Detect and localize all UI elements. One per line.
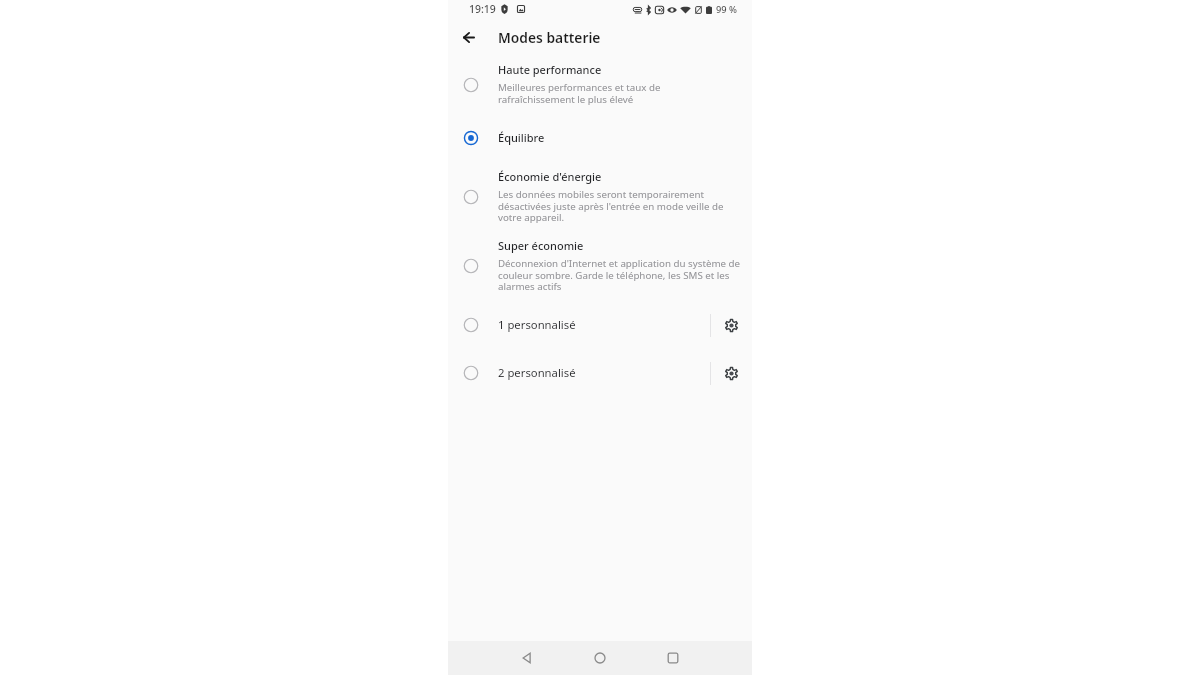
button[interactable]: Équilibre xyxy=(448,109,752,167)
staticText: Modes batterie xyxy=(498,28,601,47)
staticText: Les données mobiles seront temporairemen… xyxy=(498,188,724,224)
button[interactable]: Back xyxy=(510,641,544,675)
staticText: Équilibre xyxy=(498,130,545,145)
staticText: Super économie xyxy=(498,238,584,253)
staticText: Meilleures performances et taux de rafra… xyxy=(498,81,661,106)
staticText: 19:19 xyxy=(469,2,496,16)
staticText: 2 personnalisé xyxy=(498,365,576,380)
button[interactable]: Économie d'énergie xyxy=(448,168,752,226)
button[interactable]: 2 personnalisé xyxy=(448,351,710,395)
button[interactable]: Back xyxy=(456,24,482,50)
button[interactable]: Settings xyxy=(711,303,752,347)
button[interactable]: 1 personnalisé xyxy=(448,303,710,347)
button[interactable]: Recents xyxy=(656,641,690,675)
button[interactable]: Haute performance xyxy=(448,56,752,114)
button[interactable]: Super économie xyxy=(448,237,752,295)
staticText: 99 % xyxy=(716,3,737,16)
button[interactable]: Home xyxy=(583,641,617,675)
staticText: Économie d'énergie xyxy=(498,169,602,184)
staticText: 1 personnalisé xyxy=(498,317,576,332)
button[interactable]: Settings xyxy=(711,351,752,395)
staticText: Haute performance xyxy=(498,62,602,77)
staticText: Déconnexion d'Internet et application du… xyxy=(498,257,741,293)
